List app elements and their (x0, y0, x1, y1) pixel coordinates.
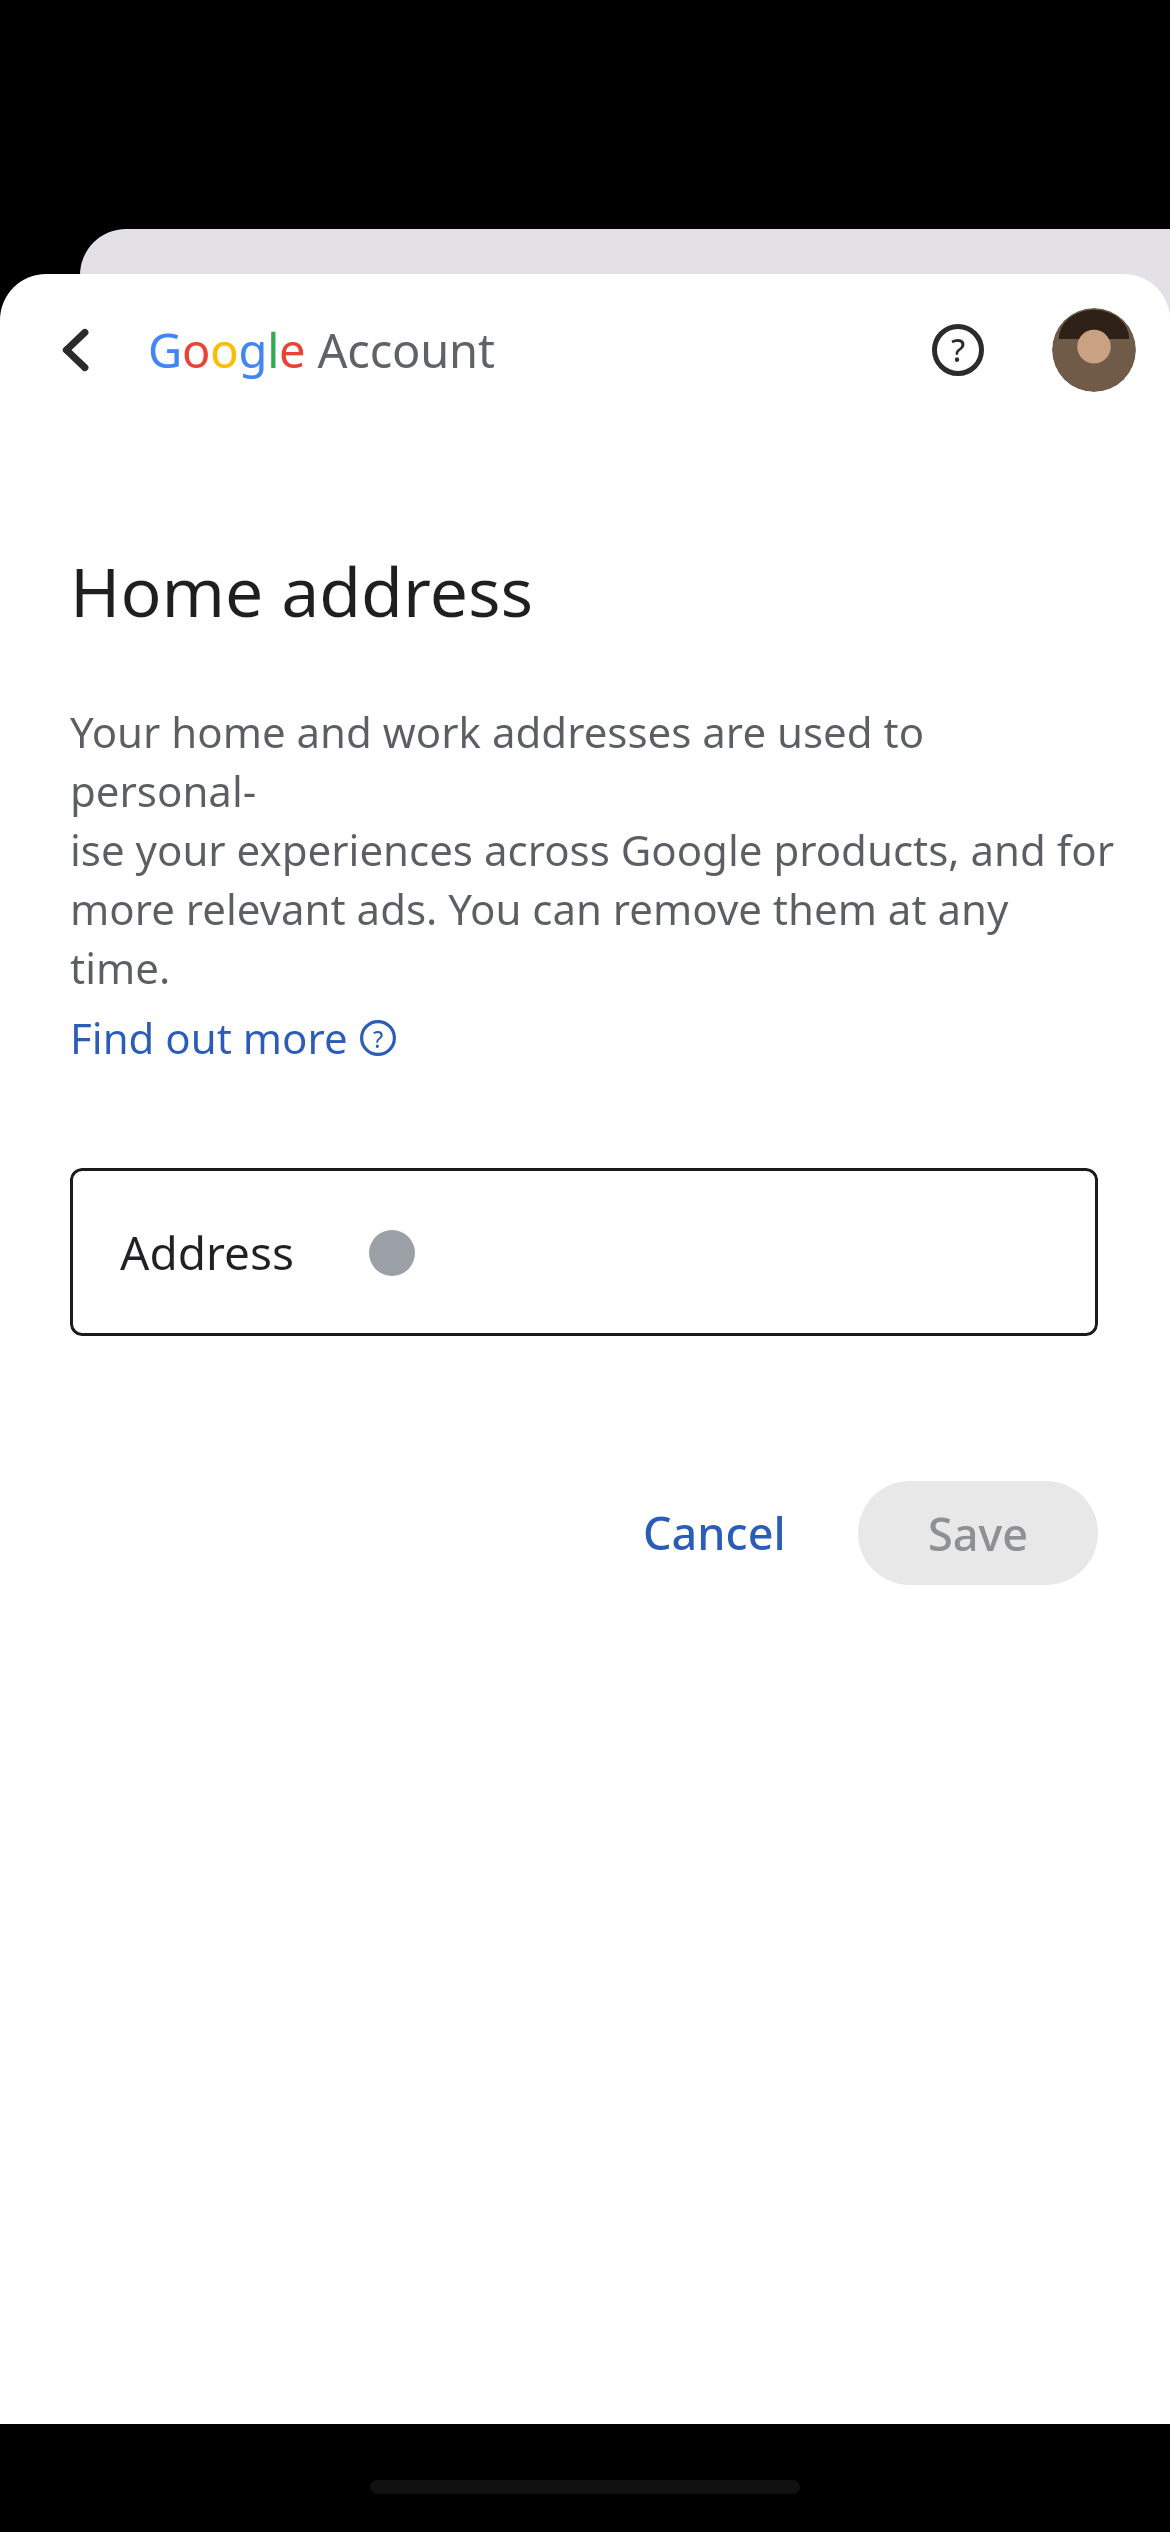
button[interactable]: Save (858, 1481, 1098, 1585)
staticText: ? (951, 328, 966, 372)
button[interactable]: Google Account profile (1052, 308, 1136, 392)
button[interactable]: Help (916, 308, 1000, 392)
button[interactable]: Address (70, 1168, 1098, 1336)
staticText: Address (120, 1221, 295, 1284)
button[interactable]: Cancel (599, 1474, 830, 1591)
staticText: Find out more (70, 1009, 348, 1066)
button[interactable]: Find out more (70, 1009, 396, 1066)
staticText: Save (928, 1503, 1029, 1564)
staticText: Cancel (643, 1502, 786, 1563)
button[interactable]: Back (36, 309, 118, 391)
staticText: Google Account (148, 318, 495, 382)
button[interactable]: Google Account (148, 318, 495, 382)
staticText: Your home and work addresses are used to… (70, 703, 1114, 997)
staticText: ? (373, 1023, 384, 1054)
staticText: Home address (70, 544, 534, 637)
